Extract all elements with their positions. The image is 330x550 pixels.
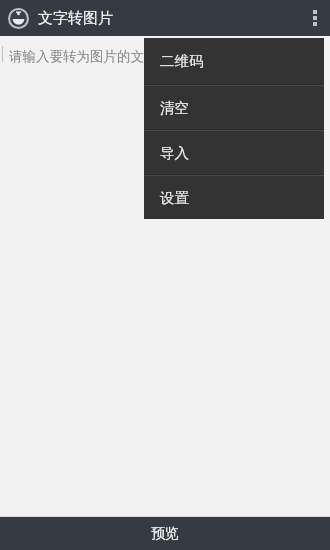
staticText: 二维码 (160, 52, 204, 70)
staticText: 导入 (160, 144, 189, 162)
button[interactable]: 导入 (144, 131, 324, 174)
staticText: 文字转图片 (38, 9, 113, 28)
staticText: 清空 (160, 99, 189, 117)
staticText: 请输入要转为图片的文字 (9, 48, 158, 65)
button[interactable]: 二维码 (144, 38, 324, 84)
button[interactable]: 清空 (144, 86, 324, 129)
button[interactable]: More options (300, 0, 330, 36)
staticText: 预览 (151, 525, 179, 543)
button[interactable]: 设置 (144, 176, 324, 219)
staticText: 设置 (160, 189, 189, 207)
button[interactable]: 预览 (0, 517, 330, 550)
button[interactable]: 请输入要转为图片的文字 (0, 36, 330, 517)
